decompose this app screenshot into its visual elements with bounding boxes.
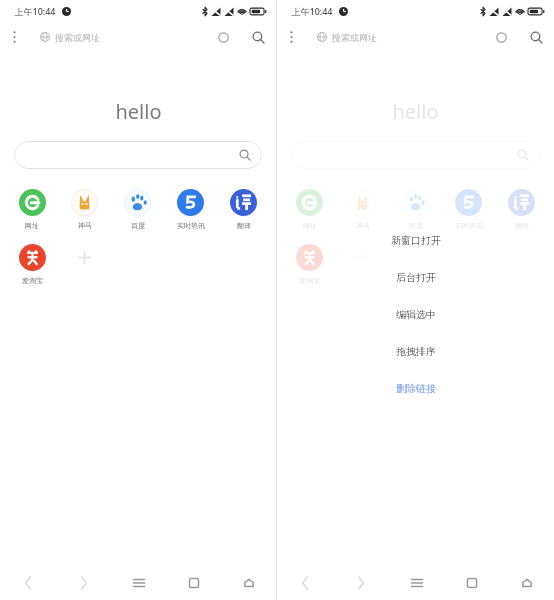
button[interactable]: More options xyxy=(0,22,28,52)
button[interactable]: 神马 xyxy=(336,189,389,230)
staticText: 翻译 xyxy=(237,221,251,230)
staticText: 上午10:44 xyxy=(291,5,333,17)
staticText: 后台打开 xyxy=(396,271,436,284)
staticText: 拖拽排序 xyxy=(396,345,436,358)
button[interactable]: 编辑选中 xyxy=(277,296,554,333)
button[interactable]: Reload xyxy=(484,22,518,52)
button[interactable]: Reload xyxy=(206,22,240,52)
button[interactable]: 网址 xyxy=(6,189,58,230)
staticText: hello xyxy=(115,98,162,125)
button[interactable]: 百度 xyxy=(111,189,164,230)
button[interactable]: 后台打开 xyxy=(277,259,554,296)
button[interactable]: 实时热讯 xyxy=(442,189,495,230)
button[interactable]: Tabs xyxy=(444,565,499,600)
button[interactable]: More options xyxy=(277,22,305,52)
button[interactable]: 翻译 xyxy=(495,189,548,230)
staticText: 神马 xyxy=(78,221,92,230)
staticText: 百度 xyxy=(409,221,423,230)
button[interactable]: Search xyxy=(518,22,554,52)
button[interactable]: Back xyxy=(0,565,56,600)
button[interactable]: Menu xyxy=(389,565,444,600)
button[interactable]: Home xyxy=(221,565,276,600)
button[interactable]: 搜索或网址 xyxy=(305,22,484,52)
staticText: 网址 xyxy=(303,221,317,230)
staticText: 爱淘宝 xyxy=(299,276,320,285)
staticText: 搜索或网址 xyxy=(332,32,377,43)
button[interactable]: 删除链接 xyxy=(277,370,554,407)
button[interactable]: Add shortcut xyxy=(58,244,111,285)
button[interactable]: Tabs xyxy=(166,565,221,600)
button[interactable]: 实时热讯 xyxy=(164,189,217,230)
staticText: 实时热讯 xyxy=(455,221,483,230)
staticText: 上午10:44 xyxy=(14,5,56,17)
button[interactable]: 爱淘宝 xyxy=(283,244,336,285)
staticText: 百度 xyxy=(131,221,145,230)
staticText: 新窗口打开 xyxy=(391,234,441,247)
staticText: 网址 xyxy=(25,221,39,230)
staticText: 删除链接 xyxy=(396,382,436,395)
button[interactable]: Menu xyxy=(111,565,166,600)
staticText: 编辑选中 xyxy=(396,308,436,321)
button[interactable]: Back xyxy=(277,565,333,600)
staticText: 爱淘宝 xyxy=(22,276,43,285)
staticText: 搜索或网址 xyxy=(55,32,100,43)
staticText: 翻译 xyxy=(515,221,529,230)
button[interactable]: 拖拽排序 xyxy=(277,333,554,370)
button[interactable]: Home xyxy=(499,565,554,600)
button[interactable]: 网址 xyxy=(283,189,336,230)
button[interactable]: 神马 xyxy=(58,189,111,230)
button[interactable]: 搜索或网址 xyxy=(28,22,206,52)
button[interactable]: Search field xyxy=(14,141,262,169)
staticText: 神马 xyxy=(356,221,370,230)
button[interactable]: Search xyxy=(240,22,276,52)
button[interactable]: Forward xyxy=(56,565,111,600)
button[interactable]: 翻译 xyxy=(217,189,270,230)
button[interactable]: Forward xyxy=(333,565,389,600)
button[interactable]: 新窗口打开 xyxy=(277,222,554,259)
button[interactable]: 爱淘宝 xyxy=(6,244,58,285)
staticText: 实时热讯 xyxy=(177,221,205,230)
staticText: hello xyxy=(392,98,439,125)
button[interactable]: 百度 xyxy=(389,189,442,230)
